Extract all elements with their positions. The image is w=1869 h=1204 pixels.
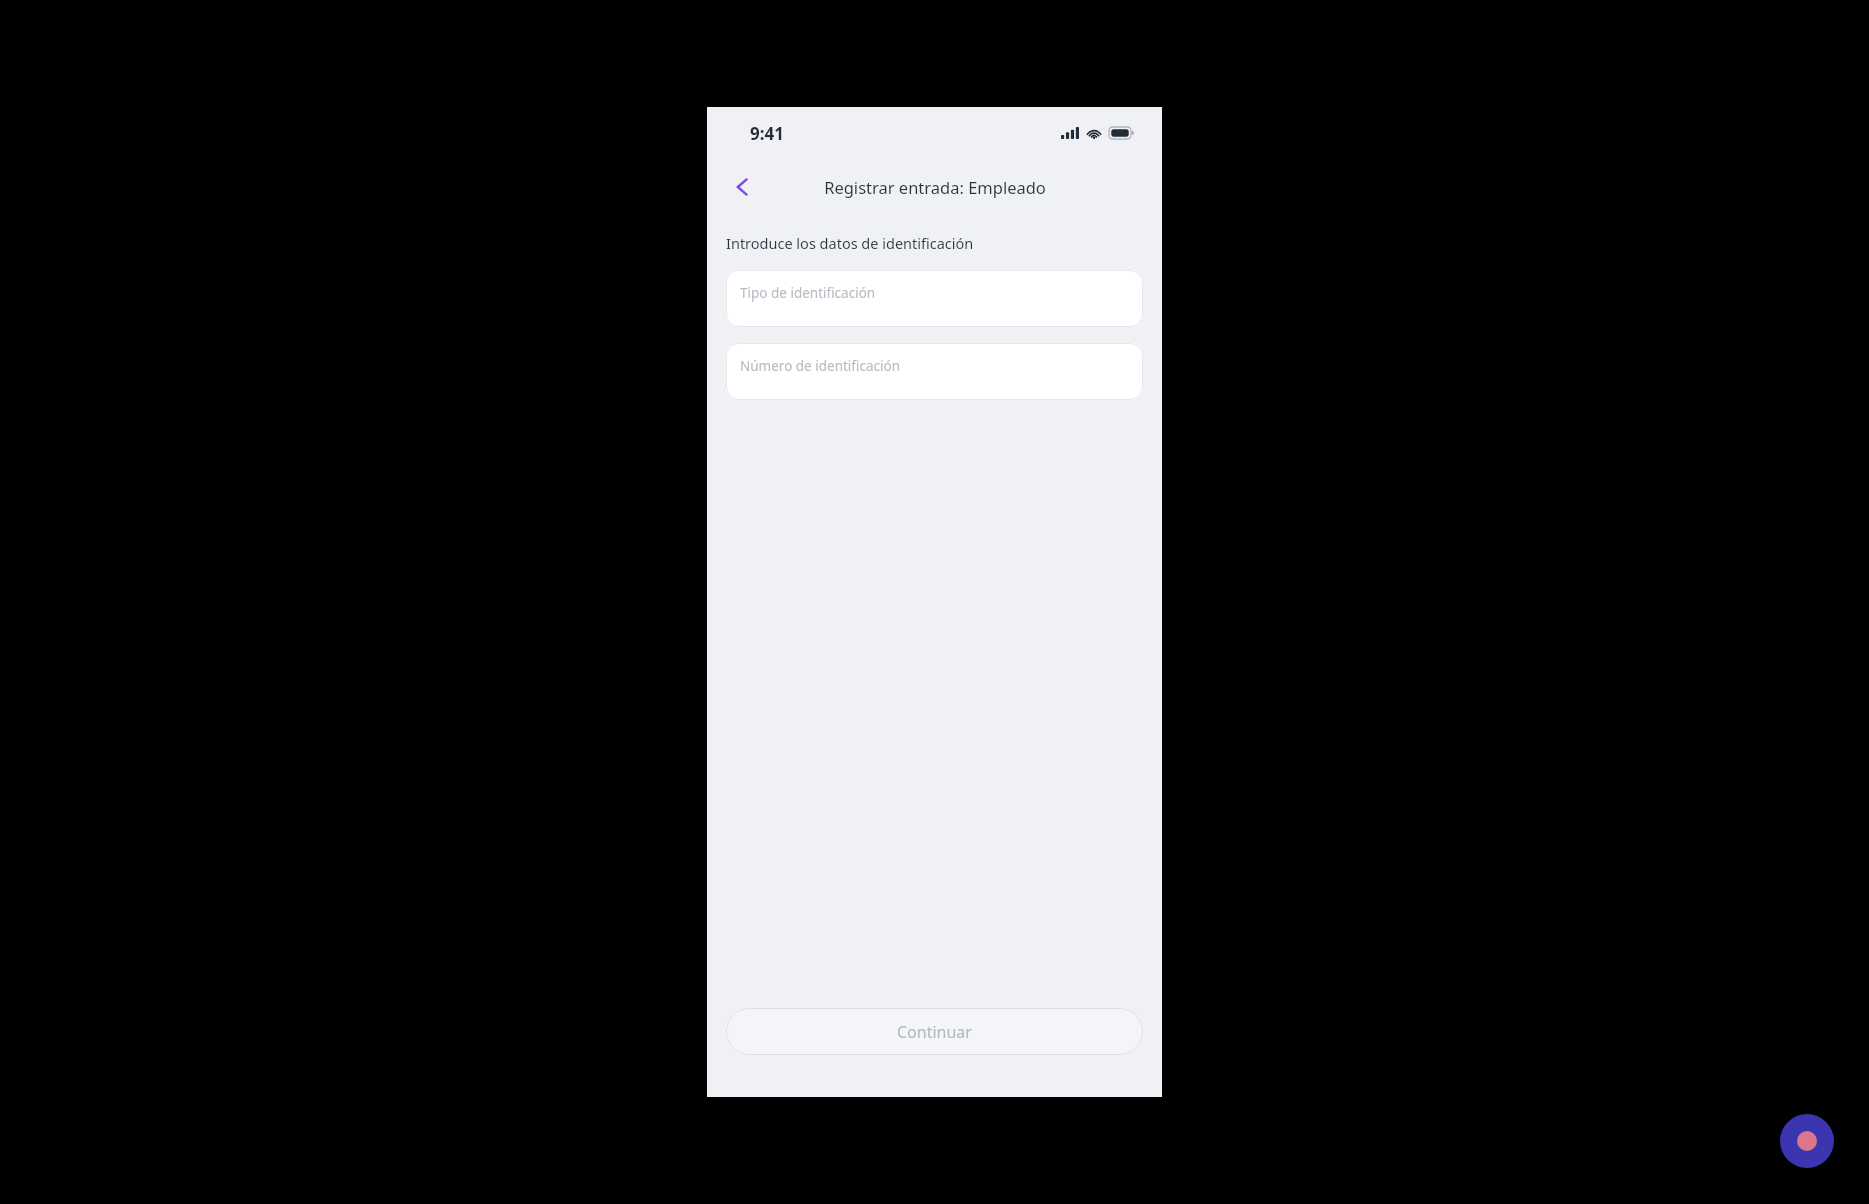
staticText: Continuar (897, 1021, 972, 1043)
staticText: Número de identificación (740, 357, 901, 375)
button[interactable]: Back (721, 165, 765, 209)
button[interactable]: Continuar (726, 1008, 1143, 1055)
button[interactable]: Record (1780, 1114, 1834, 1168)
staticText: 9:41 (750, 122, 784, 145)
button[interactable]: Número de identificación (726, 343, 1143, 400)
button[interactable]: Tipo de identificación (726, 270, 1143, 327)
staticText: Registrar entrada: Empleado (824, 176, 1046, 198)
staticText: Introduce los datos de identificación (726, 233, 974, 253)
staticText: Tipo de identificación (740, 284, 876, 302)
